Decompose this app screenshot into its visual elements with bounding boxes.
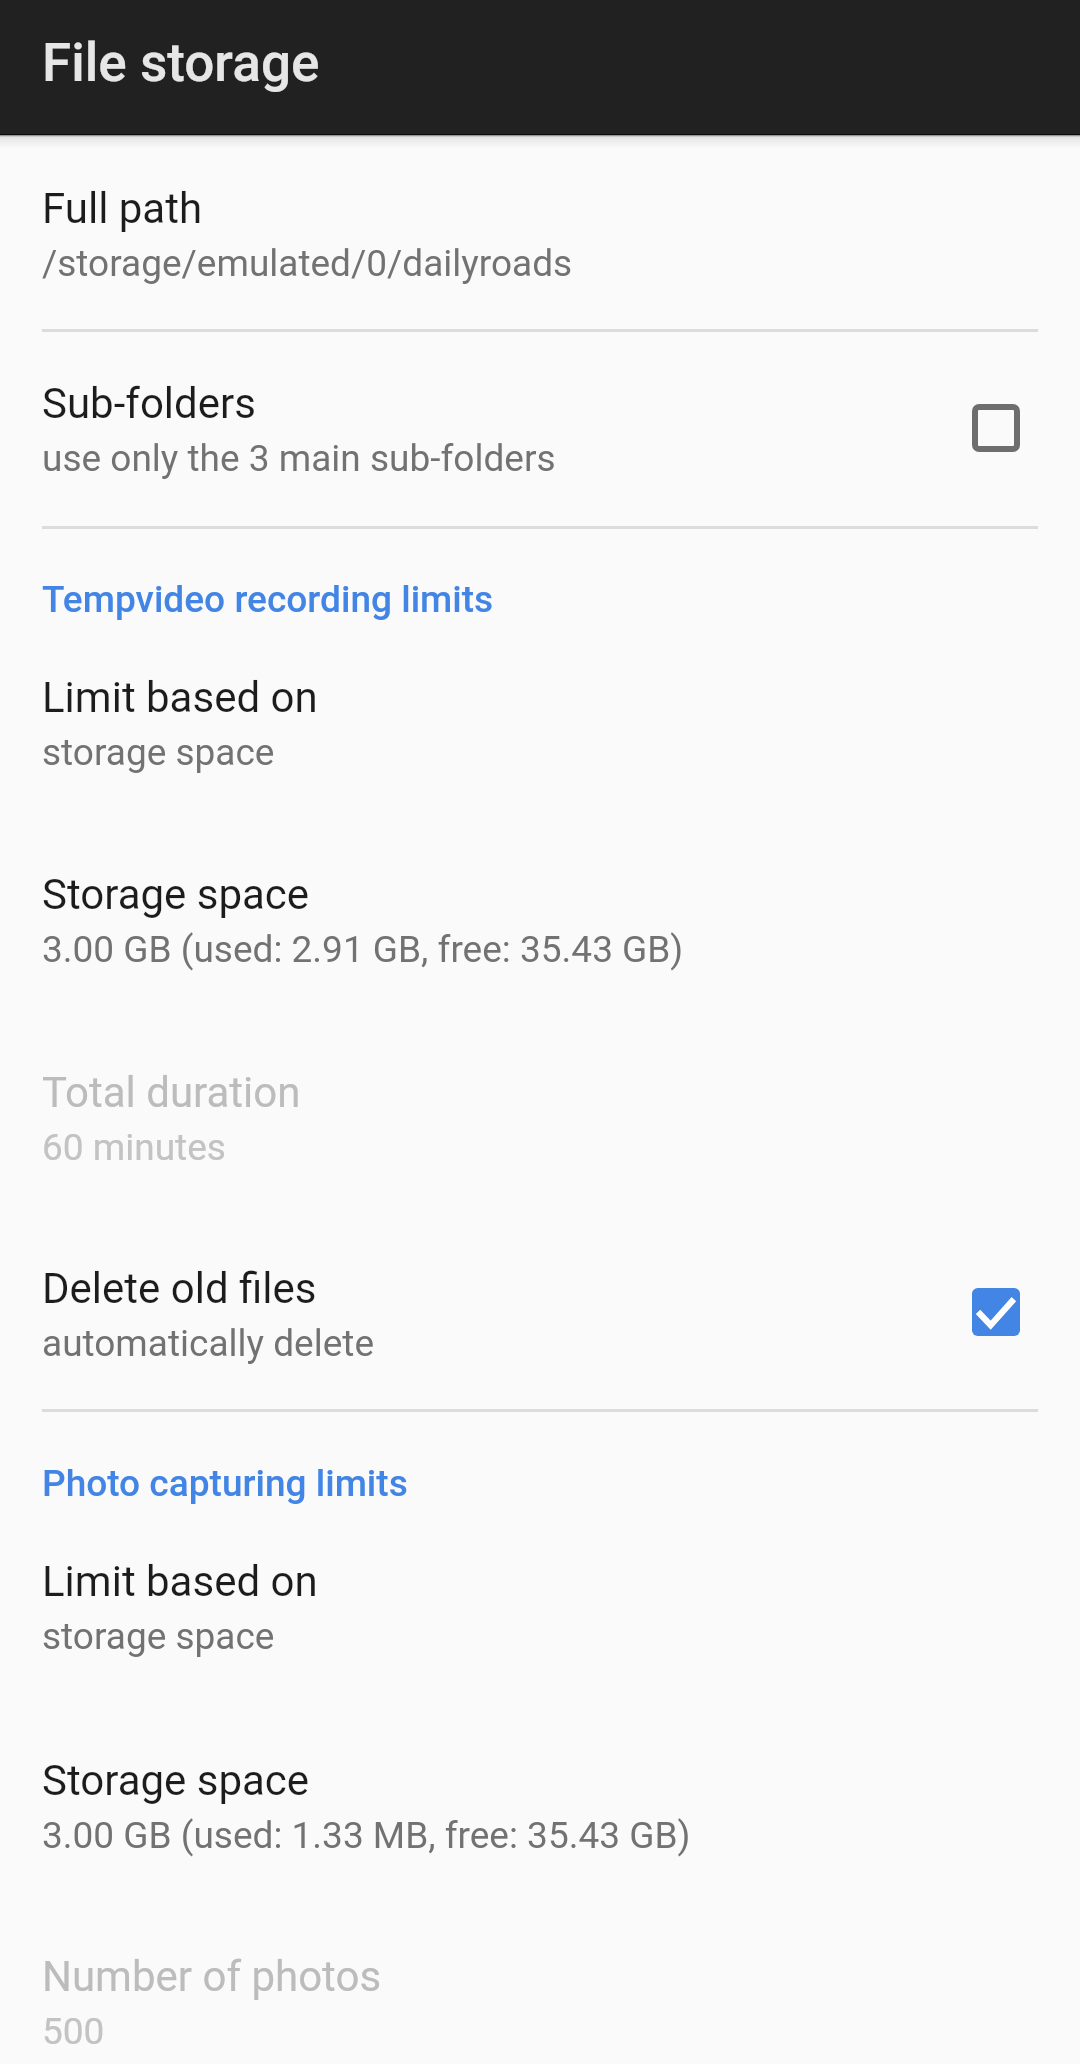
staticText: Storage space bbox=[42, 870, 310, 919]
staticText: Limit based on bbox=[42, 1557, 318, 1606]
staticText: storage space bbox=[42, 1615, 275, 1658]
staticText: 500 bbox=[42, 2010, 105, 2053]
button[interactable]: Total duration bbox=[0, 1018, 1080, 1214]
staticText: /storage/emulated/0/dailyroads bbox=[42, 242, 573, 285]
staticText: Number of photos bbox=[42, 1952, 382, 2001]
staticText: Limit based on bbox=[42, 673, 318, 722]
button[interactable]: Limit based on bbox=[0, 1507, 1080, 1704]
button[interactable]: Storage space bbox=[0, 1704, 1080, 1902]
button[interactable]: Full path bbox=[0, 134, 1080, 329]
staticText: automatically delete bbox=[42, 1322, 375, 1365]
staticText: Delete old files bbox=[42, 1264, 317, 1313]
button[interactable]: Option disabled bbox=[948, 380, 1044, 476]
staticText: 3.00 GB (used: 2.91 GB, free: 35.43 GB) bbox=[42, 928, 684, 971]
button[interactable]: Limit based on bbox=[0, 623, 1080, 820]
staticText: Photo capturing limits bbox=[42, 1462, 408, 1505]
staticText: Tempvideo recording limits bbox=[42, 578, 494, 621]
staticText: storage space bbox=[42, 731, 275, 774]
staticText: Sub-folders bbox=[42, 379, 256, 428]
staticText: 3.00 GB (used: 1.33 MB, free: 35.43 GB) bbox=[42, 1814, 691, 1857]
staticText: Total duration bbox=[42, 1068, 301, 1117]
button[interactable]: Storage space bbox=[0, 820, 1080, 1018]
button[interactable]: Option enabled bbox=[948, 1264, 1044, 1360]
staticText: Storage space bbox=[42, 1756, 310, 1805]
staticText: File storage bbox=[42, 32, 320, 94]
button[interactable]: Number of photos bbox=[0, 1902, 1080, 2064]
staticText: 60 minutes bbox=[42, 1126, 226, 1169]
staticText: use only the 3 main sub-folders bbox=[42, 437, 556, 480]
staticText: Full path bbox=[42, 184, 203, 233]
button[interactable]: Delete old files bbox=[0, 1214, 1080, 1409]
button[interactable]: Sub-folders bbox=[0, 332, 1080, 526]
